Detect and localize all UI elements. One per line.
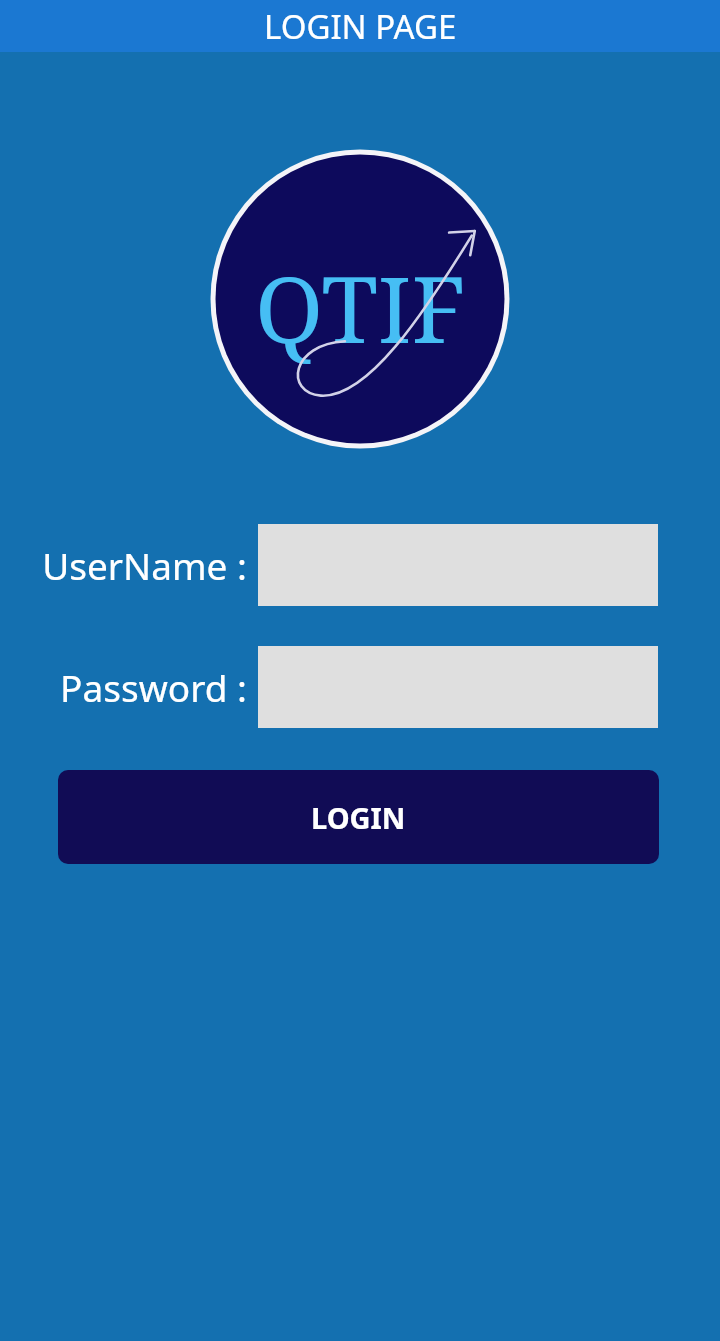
staticText: Password : bbox=[60, 662, 247, 712]
staticText: QTIF bbox=[255, 245, 466, 370]
staticText: LOGIN PAGE bbox=[264, 4, 457, 49]
staticText: LOGIN bbox=[311, 798, 406, 837]
button[interactable]: LOGIN bbox=[58, 770, 659, 864]
other: QTIF logo bbox=[209, 148, 511, 450]
staticText: UserName : bbox=[42, 540, 247, 590]
